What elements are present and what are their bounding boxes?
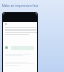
staticText: Make an impression fast — [2, 4, 39, 8]
button[interactable]: Collaborator — [5, 46, 8, 49]
